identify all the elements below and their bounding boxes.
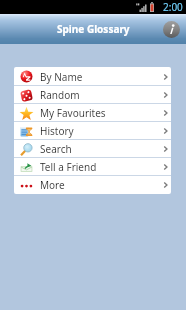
button[interactable]: Search [14, 140, 171, 158]
staticText: 2:00 [163, 0, 183, 14]
button[interactable]: About [163, 21, 180, 38]
button[interactable]: My Favourites [14, 104, 171, 122]
button[interactable]: Random [14, 86, 171, 104]
button[interactable]: History [14, 122, 171, 140]
staticText: Search [40, 142, 72, 156]
button[interactable]: More [14, 176, 171, 194]
staticText: By Name [40, 70, 83, 84]
button[interactable]: Tell a Friend [14, 158, 171, 176]
staticText: Tell a Friend [40, 160, 97, 174]
staticText: Spine Glossary [57, 22, 130, 36]
staticText: My Favourites [40, 106, 106, 120]
button[interactable]: By Name [14, 67, 171, 86]
staticText: More [40, 178, 65, 192]
staticText: History [40, 124, 74, 138]
staticText: Random [40, 88, 80, 102]
